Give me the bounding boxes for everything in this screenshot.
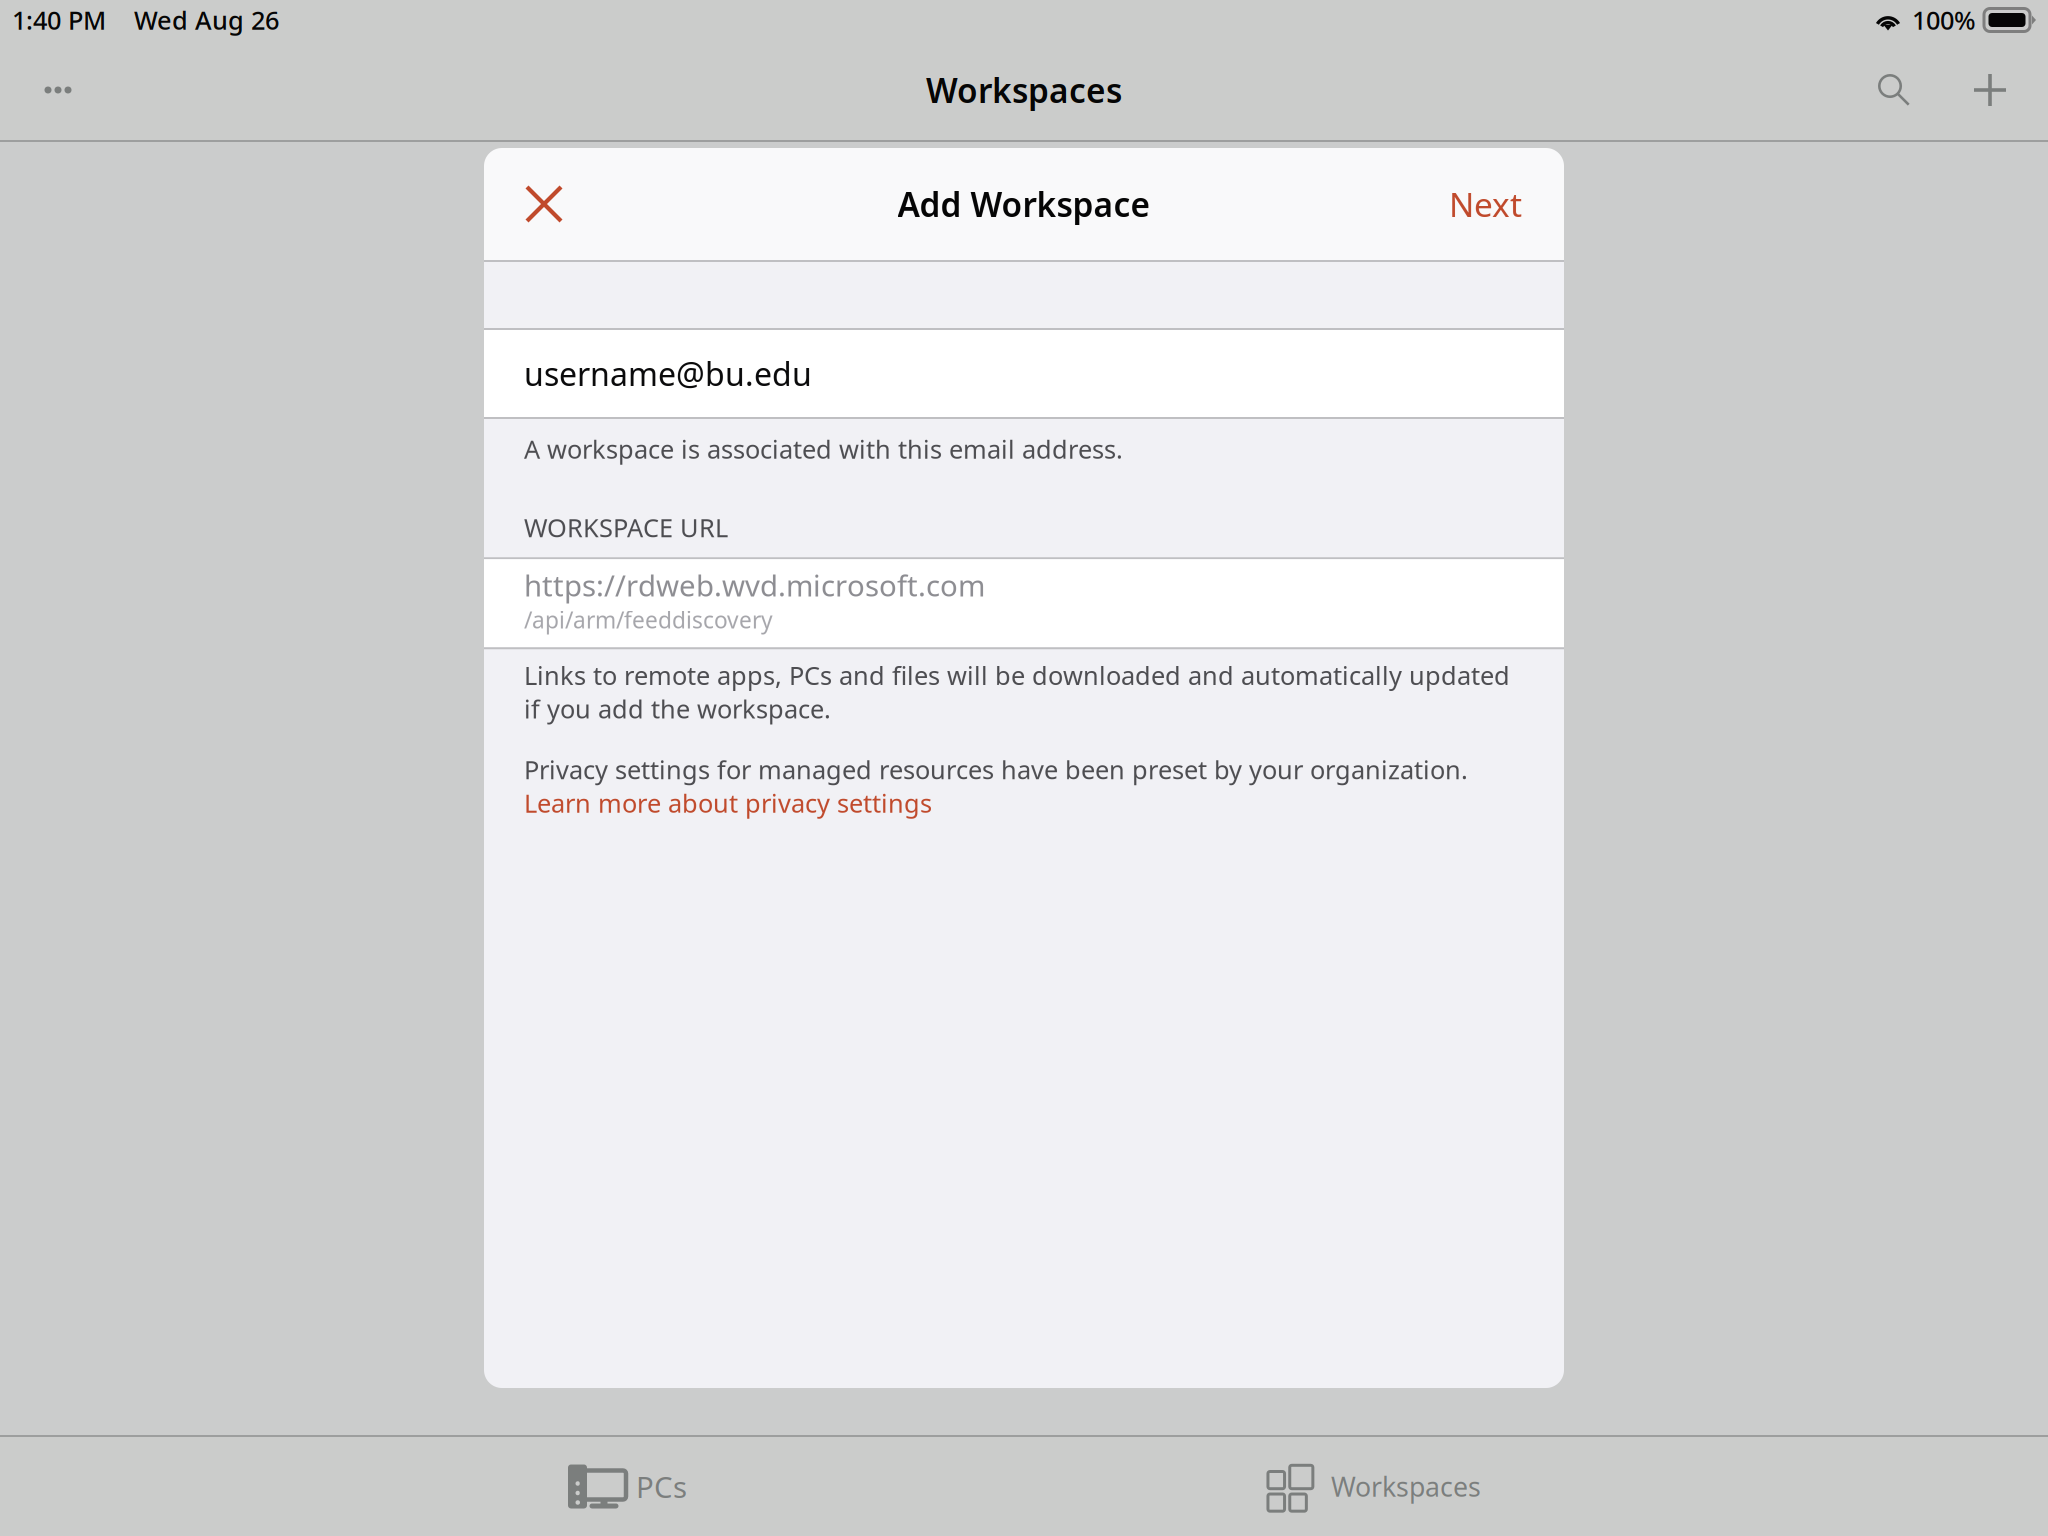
button[interactable]: Workspaces — [1226, 1437, 1509, 1536]
staticText: /api/arm/feeddiscovery — [524, 605, 773, 635]
staticText: Wed Aug 26 — [134, 3, 279, 37]
button[interactable]: Add workspace — [1954, 54, 2026, 126]
button[interactable]: Next — [1436, 164, 1522, 244]
staticText: https://rdweb.wvd.microsoft.com — [524, 566, 985, 605]
button[interactable]: Search — [1858, 54, 1930, 126]
staticText: Links to remote apps, PCs and files will… — [524, 658, 1510, 692]
button[interactable]: Learn more about privacy settings — [524, 786, 932, 820]
button[interactable]: username@bu.edu — [484, 330, 1564, 417]
button[interactable]: https://rdweb.wvd.microsoft.com — [484, 559, 1564, 647]
staticText: Workspaces — [1331, 1469, 1481, 1504]
staticText: username@bu.edu — [524, 352, 812, 395]
button[interactable]: PCs — [533, 1437, 715, 1536]
staticText: 100% — [1912, 3, 1976, 37]
staticText: if you add the workspace. — [524, 692, 831, 725]
staticText: 1:40 PM — [12, 3, 106, 37]
staticText: Next — [1449, 182, 1522, 226]
staticText: Learn more about privacy settings — [524, 786, 932, 820]
button[interactable]: Close — [506, 164, 582, 244]
button[interactable]: More options — [22, 54, 94, 126]
staticText: Privacy settings for managed resources h… — [524, 753, 1468, 786]
staticText: A workspace is associated with this emai… — [524, 432, 1123, 466]
staticText: WORKSPACE URL — [524, 511, 728, 544]
staticText: PCs — [636, 1467, 687, 1506]
staticText: Workspaces — [926, 68, 1122, 112]
staticText: Add Workspace — [897, 182, 1150, 226]
